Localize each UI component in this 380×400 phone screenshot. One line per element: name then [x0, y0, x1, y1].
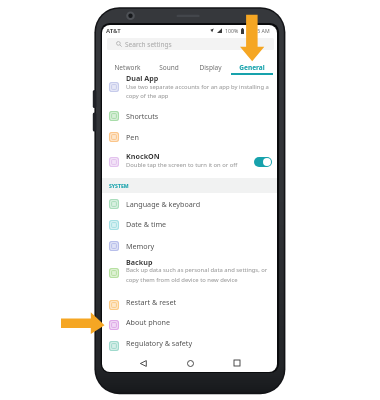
staticText: About phone	[126, 317, 170, 327]
button[interactable]: KnockON	[102, 147, 277, 178]
staticText: copy of the app	[126, 92, 169, 100]
staticText: SYSTEM	[109, 182, 129, 189]
button[interactable]: Date & time	[102, 214, 277, 235]
staticText: Regulatory & safety	[126, 338, 193, 348]
button[interactable]: Regulatory & safety	[102, 336, 277, 357]
button[interactable]: About phone	[102, 315, 277, 336]
button[interactable]: Pen	[102, 127, 277, 148]
button[interactable]: Memory	[102, 235, 277, 257]
button[interactable]: Language & keyboard	[102, 193, 277, 214]
staticText: Search settings	[125, 40, 172, 49]
button[interactable]: Back	[135, 355, 151, 371]
staticText: Memory	[126, 241, 155, 251]
button[interactable]: Restart & reset	[102, 294, 277, 315]
staticText: Sound	[159, 63, 179, 72]
button[interactable]: Recent apps	[229, 355, 245, 371]
staticText: Back up data such as personal data and s…	[126, 266, 268, 274]
staticText: 10:35 AM	[247, 27, 270, 34]
button[interactable]: Backup	[102, 256, 277, 294]
staticText: Use two separate accounts for an app by …	[126, 83, 269, 91]
button[interactable]: Display	[189, 56, 231, 75]
staticText: Display	[199, 63, 222, 72]
staticText: Date & time	[126, 219, 167, 229]
staticText: Restart & reset	[126, 297, 177, 307]
staticText: Language & keyboard	[126, 199, 201, 209]
staticText: 100%	[225, 27, 239, 34]
button[interactable]: Search settings	[107, 38, 274, 50]
button[interactable]: Dual App	[102, 75, 277, 106]
button[interactable]: Network	[107, 56, 148, 75]
staticText: Double tap the screen to turn it on or o…	[126, 161, 238, 169]
staticText: General	[239, 63, 265, 72]
staticText: copy them from old device to new device	[126, 276, 238, 284]
staticText: KnockON	[126, 151, 160, 161]
button[interactable]: Sound	[148, 56, 189, 75]
staticText: Backup	[126, 257, 153, 267]
staticText: Network	[114, 63, 141, 72]
staticText: AT&T	[106, 27, 121, 35]
staticText: Shortcuts	[126, 111, 159, 121]
button[interactable]: Shortcuts	[102, 106, 277, 127]
staticText: Dual App	[126, 73, 159, 83]
button[interactable]: General	[231, 56, 273, 75]
staticText: Pen	[126, 132, 139, 142]
button[interactable]: KnockON toggle	[254, 157, 272, 167]
button[interactable]: Home	[182, 355, 198, 371]
